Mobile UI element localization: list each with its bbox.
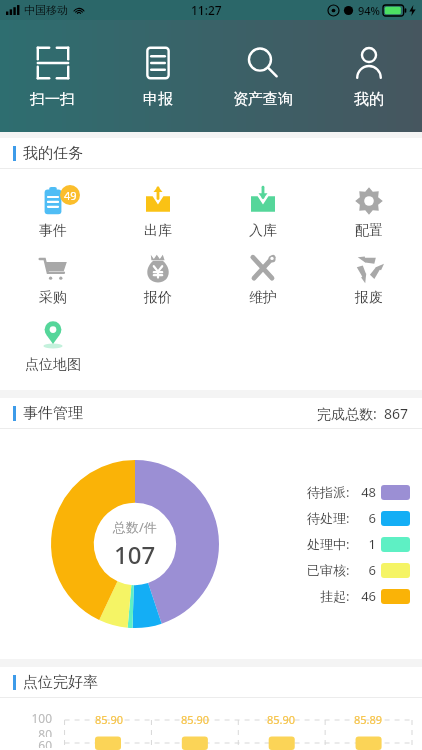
staticText: 报废 [355,289,383,307]
button[interactable]: 采购 [0,246,105,313]
staticText: 处理中: [307,535,350,553]
button[interactable]: 报价 [105,246,210,313]
staticText: 48 [350,483,376,501]
button[interactable]: 出库 [105,179,210,246]
staticText: 扫一扫 [30,90,75,109]
button[interactable]: 报废 [316,246,422,313]
staticText: 94% [358,3,380,18]
staticText: 出库 [144,222,172,240]
staticText: 我的任务 [23,144,83,163]
staticText: 80 [8,726,52,737]
staticText: 完成总数: 867 [317,404,409,423]
staticText: 配置 [355,222,383,240]
staticText: 待处理: [307,509,350,527]
staticText: 采购 [39,289,67,307]
staticText: 报价 [144,289,172,307]
staticText: 已审核: [307,561,350,579]
staticText: 100 [8,710,52,726]
staticText: 我的 [354,90,384,109]
button[interactable]: 点位地图 [0,313,105,380]
staticText: 1 [350,535,376,553]
staticText: 资产查询 [233,90,293,109]
staticText: 46 [350,587,376,605]
staticText: 85.90 [181,712,210,727]
staticText: 点位地图 [25,356,81,374]
button[interactable]: 配置 [316,179,422,246]
staticText: 85.90 [267,712,296,727]
staticText: 6 [350,561,376,579]
button[interactable]: 扫一扫 [0,40,105,113]
staticText: 待指派: [307,483,350,501]
staticText: 事件 [39,222,67,240]
staticText: 挂起: [320,587,350,605]
staticText: 49 [64,188,77,203]
button[interactable]: 申报 [105,40,210,113]
button[interactable]: 维护 [210,246,316,313]
staticText: 107 [114,538,156,571]
staticText: 85.89 [354,712,383,727]
staticText: 事件管理 [23,404,83,423]
button[interactable]: 我的 [316,40,422,113]
button[interactable]: 资产查询 [210,40,316,113]
button[interactable]: 49 [0,179,105,246]
staticText: 11:27 [191,2,222,18]
staticText: 6 [350,509,376,527]
staticText: 85.90 [95,712,124,727]
staticText: 维护 [249,289,277,307]
button[interactable]: 入库 [210,179,316,246]
staticText: 总数/件 [113,518,157,536]
staticText: 入库 [249,222,277,240]
staticText: 申报 [143,90,173,109]
staticText: 60 [8,737,52,748]
staticText: 中国移动 [24,3,68,17]
staticText: 点位完好率 [23,673,98,692]
